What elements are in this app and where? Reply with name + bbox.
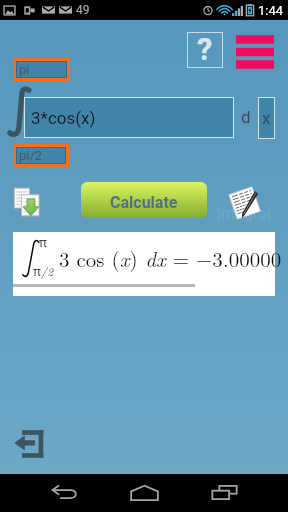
button[interactable]: Save <box>12 187 42 217</box>
button[interactable]: Help <box>187 32 223 68</box>
staticText: 3*cos(x) <box>31 108 96 128</box>
button[interactable]: π <box>13 232 275 296</box>
staticText: x <box>262 108 271 128</box>
button[interactable]: pi <box>16 61 67 78</box>
staticText: 1:44 <box>258 3 284 18</box>
staticText: pi/2 <box>19 148 43 163</box>
button[interactable]: Notes <box>229 186 263 220</box>
button[interactable]: pi/2 <box>16 147 66 164</box>
button[interactable]: Recent apps <box>176 474 272 512</box>
staticText: π <box>39 234 47 250</box>
button[interactable]: 3*cos(x) <box>24 97 234 138</box>
staticText: ? <box>197 31 213 67</box>
button[interactable]: Home <box>112 474 176 512</box>
staticText: Calculate <box>110 193 178 212</box>
button[interactable]: Calculate <box>81 182 207 218</box>
staticText: 3 cos (x) dx = −3.00000 <box>59 243 282 273</box>
staticText: Integral <box>217 204 271 223</box>
button[interactable]: Exit <box>13 428 45 460</box>
button[interactable]: x <box>258 97 275 139</box>
staticText: 49 <box>76 3 90 17</box>
button[interactable]: Menu <box>230 30 280 72</box>
staticText: π/2 <box>33 262 54 279</box>
button[interactable]: Back <box>16 474 112 512</box>
staticText: d <box>241 107 251 127</box>
staticText: pi <box>19 62 30 77</box>
